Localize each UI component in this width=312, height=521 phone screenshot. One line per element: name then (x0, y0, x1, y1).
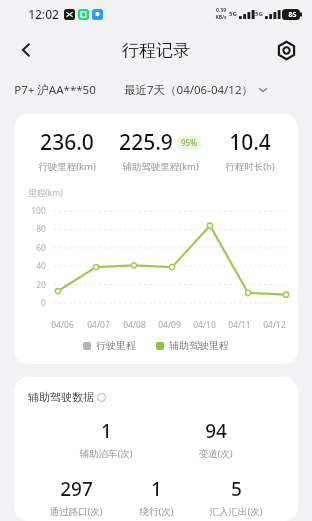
staticText: 20 (36, 279, 46, 291)
staticText: 04/09 (158, 319, 181, 331)
staticText: KB/s (215, 14, 227, 21)
staticText: 225.9 (119, 128, 173, 157)
staticText: 里程(km) (28, 187, 63, 199)
staticText: 04/08 (123, 319, 146, 331)
staticText: 236.0 (40, 128, 94, 157)
button[interactable]: Back (8, 32, 44, 68)
staticText: 1 (101, 418, 112, 444)
staticText: 04/11 (228, 319, 251, 331)
button[interactable]: Settings (268, 32, 304, 68)
staticText: 辅助驾驶数据 (28, 390, 94, 404)
staticText: 80 (36, 223, 46, 235)
staticText: P7+ 沪AA***50 (14, 82, 96, 98)
staticText: 行程时长(h) (225, 160, 275, 173)
staticText: 10.4 (229, 128, 271, 157)
staticText: 辅助驾驶里程 (169, 339, 229, 352)
staticText: 5G (255, 10, 263, 18)
staticText: 行驶里程(km) (38, 160, 96, 173)
staticText: 297 (60, 476, 93, 502)
staticText: 0 (41, 297, 46, 309)
staticText: 绕行(次) (139, 505, 174, 518)
staticText: 40 (36, 260, 46, 272)
staticText: 94 (205, 418, 227, 444)
staticText: 通过路口(次) (49, 505, 103, 518)
staticText: 最近7天（04/06-04/12） (124, 82, 253, 98)
staticText: 行驶里程 (96, 339, 136, 352)
staticText: 汇入汇出(次) (209, 505, 263, 518)
staticText: 辅助驾驶里程(km) (122, 160, 199, 173)
staticText: 行程记录 (122, 40, 190, 61)
staticText: 04/12 (263, 319, 286, 331)
staticText: 95% (181, 137, 197, 148)
staticText: 0.39 (216, 7, 226, 14)
button[interactable]: P7+ 沪AA***50 (14, 82, 96, 98)
staticText: 辅助泊车(次) (79, 447, 133, 460)
button[interactable]: 最近7天（04/06-04/12） (124, 82, 268, 98)
other: Info (97, 393, 106, 402)
staticText: 60 (36, 242, 46, 254)
button[interactable]: 辅助驾驶数据 (28, 390, 106, 404)
staticText: 04/07 (87, 319, 110, 331)
staticText: 100 (31, 205, 46, 217)
button[interactable]: 行驶里程 (83, 339, 136, 352)
staticText: 5G (229, 10, 237, 18)
button[interactable]: 辅助驾驶里程 (156, 339, 229, 352)
staticText: 12:02 (28, 6, 59, 22)
staticText: 85 (288, 10, 297, 20)
staticText: 04/10 (193, 319, 216, 331)
staticText: 变道(次) (198, 447, 233, 460)
staticText: 5 (231, 476, 242, 502)
staticText: 1 (151, 476, 162, 502)
staticText: 04/06 (51, 319, 74, 331)
